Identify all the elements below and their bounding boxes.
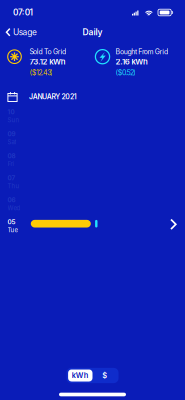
staticText: Tue: [8, 226, 17, 234]
staticText: 10: [8, 108, 14, 116]
staticText: 73.12 kWh: [29, 57, 66, 66]
button[interactable]: 05: [8, 216, 177, 238]
staticText: 07: [8, 174, 15, 182]
staticText: 07:01: [13, 7, 33, 17]
staticText: kWh: [72, 371, 89, 380]
staticText: Thu: [8, 182, 19, 190]
button[interactable]: kWh: [68, 369, 92, 381]
staticText: ($0.52): [115, 68, 136, 77]
staticText: Daily: [82, 27, 102, 37]
staticText: Sold To Grid: [29, 47, 66, 56]
staticText: $: [102, 371, 107, 380]
button[interactable]: Usage: [0, 24, 42, 41]
button[interactable]: $: [92, 369, 117, 381]
staticText: ($12.43): [29, 68, 53, 77]
staticText: Sun: [8, 116, 19, 124]
staticText: Fri: [8, 160, 13, 168]
staticText: 2.16 kWh: [115, 57, 148, 66]
staticText: 08: [8, 152, 15, 160]
staticText: Bought From Grid: [115, 47, 168, 56]
staticText: Wed: [8, 204, 20, 212]
staticText: 09: [8, 130, 15, 138]
staticText: 05: [8, 218, 15, 226]
staticText: Usage: [13, 27, 37, 37]
staticText: JANUARY 2021: [29, 92, 77, 101]
staticText: 06: [8, 196, 15, 204]
staticText: Sat: [8, 138, 16, 146]
